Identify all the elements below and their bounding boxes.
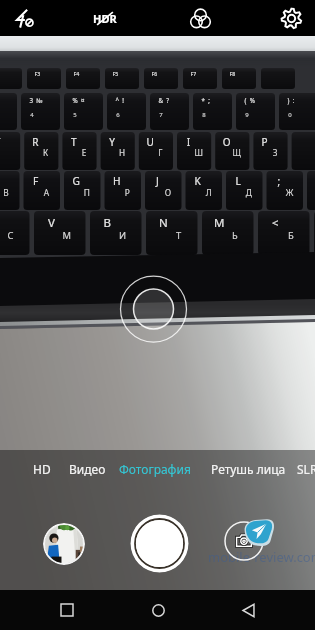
button[interactable]: HD	[28, 452, 56, 486]
button[interactable]: Recents	[44, 590, 90, 630]
staticText: Видео	[69, 461, 106, 477]
button[interactable]: Ретушь лица	[206, 452, 291, 486]
staticText: SLR	[297, 461, 315, 477]
staticText: HD	[33, 461, 51, 477]
staticText: Ретушь лица	[211, 461, 286, 477]
staticText: Фотография	[119, 461, 191, 477]
button[interactable]: Видео	[64, 452, 111, 486]
button[interactable]: Color filter	[180, 0, 220, 36]
button[interactable]: HDR off	[85, 0, 125, 36]
button[interactable]: Back	[225, 590, 271, 630]
button[interactable]: Фотография	[114, 452, 196, 486]
button[interactable]: Home	[135, 590, 181, 630]
button[interactable]: SLR	[292, 452, 315, 486]
button[interactable]: Switch camera	[224, 521, 264, 561]
staticText: mobile-review.com	[208, 548, 315, 566]
button[interactable]: Flash off	[6, 0, 42, 36]
button[interactable]: Settings	[271, 0, 311, 36]
button[interactable]: Gallery	[43, 523, 85, 565]
staticText: HDR	[93, 11, 117, 26]
button[interactable]: Take photo	[130, 514, 189, 573]
